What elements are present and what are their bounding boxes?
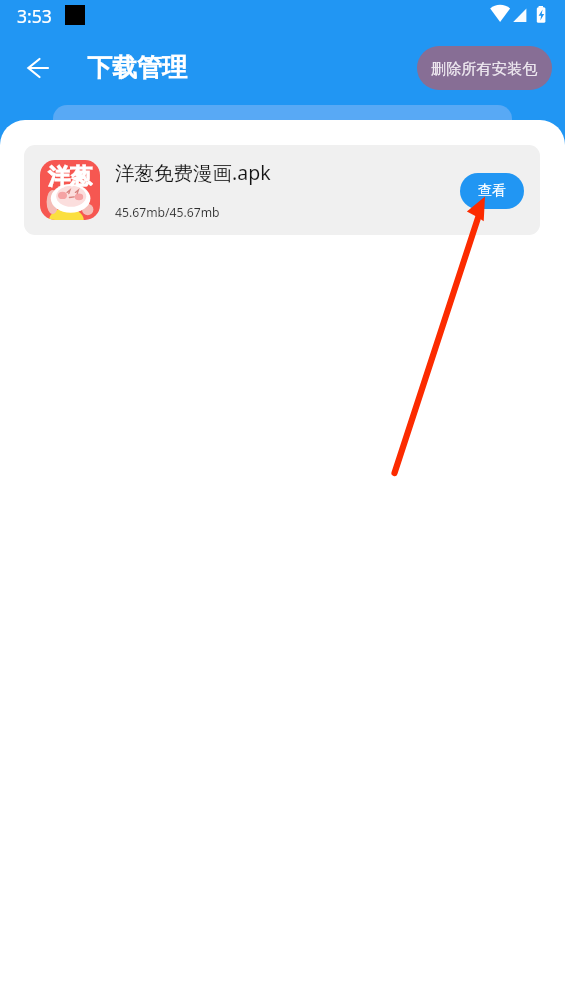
staticText: 3:53 <box>17 4 52 28</box>
staticText: 删除所有安装包 <box>431 59 538 78</box>
button[interactable]: 洋葱 <box>24 145 540 235</box>
staticText: 洋葱免费漫画.apk <box>115 159 271 186</box>
button[interactable]: 查看 <box>460 173 524 209</box>
staticText: 查看 <box>478 182 506 200</box>
button[interactable]: 删除所有安装包 <box>417 46 552 90</box>
staticText: 45.67mb/45.67mb <box>115 204 220 221</box>
button[interactable]: Back <box>16 46 60 90</box>
staticText: 洋葱 <box>48 163 92 191</box>
staticText: 下载管理 <box>87 52 187 83</box>
